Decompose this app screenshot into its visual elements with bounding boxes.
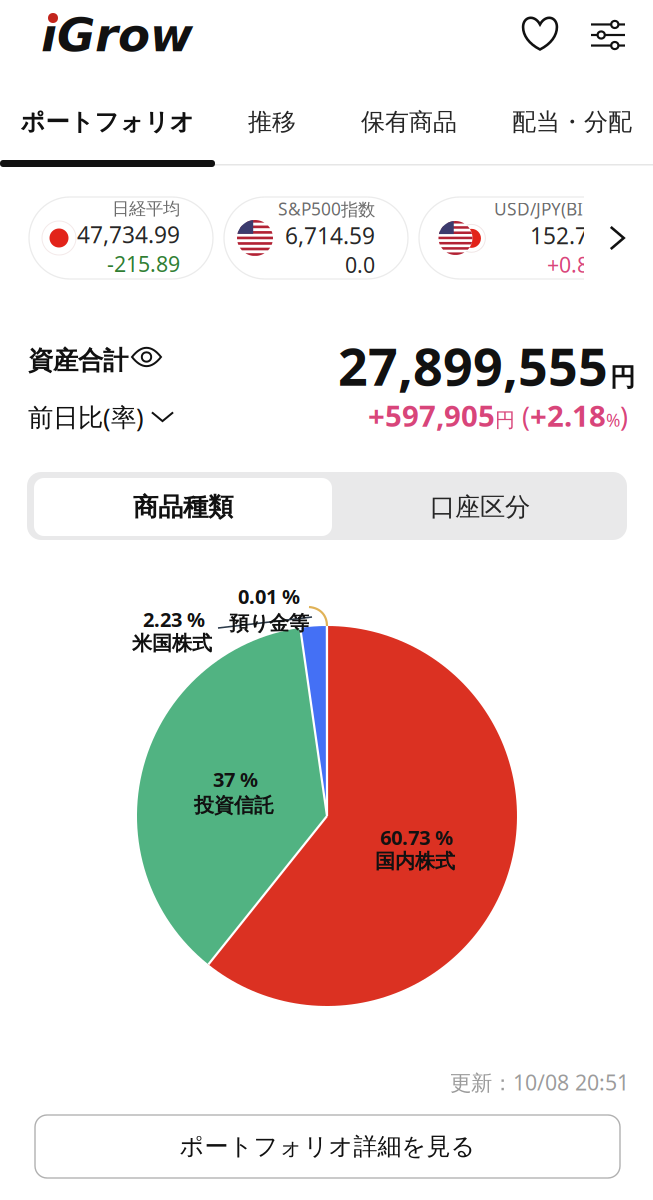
- button[interactable]: More market indices: [605, 226, 629, 250]
- staticText: 保有商品: [361, 107, 457, 137]
- staticText: 0.01 %: [238, 583, 300, 610]
- button[interactable]: ポートフォリオ詳細を見る: [35, 1115, 620, 1178]
- staticText: 日経平均: [112, 198, 180, 219]
- staticText: ): [620, 399, 628, 434]
- button[interactable]: 保有商品: [344, 92, 474, 152]
- staticText: 資産合計: [28, 345, 128, 376]
- staticText: 60.73 %: [380, 824, 453, 851]
- staticText: -215.89: [107, 249, 180, 278]
- button[interactable]: Filters: [591, 18, 625, 52]
- staticText: (: [515, 399, 530, 434]
- button[interactable]: 配当・分配: [492, 92, 652, 152]
- staticText: %: [606, 409, 620, 432]
- staticText: 国内株式: [375, 849, 455, 874]
- staticText: 37 %: [213, 766, 258, 793]
- button[interactable]: Expand change details: [151, 405, 174, 428]
- button[interactable]: ポートフォリオ: [0, 92, 215, 152]
- button[interactable]: 推移: [217, 92, 327, 152]
- staticText: iGrow: [41, 8, 193, 62]
- staticText: ポートフォリオ詳細を見る: [179, 1132, 475, 1161]
- staticText: 6,714.59: [285, 220, 375, 250]
- staticText: 更新：10/08 20:51: [450, 1068, 629, 1096]
- staticText: 27,899,555: [338, 331, 608, 400]
- staticText: 円: [495, 408, 515, 432]
- staticText: 0.0: [345, 250, 375, 279]
- button[interactable]: 口座区分: [335, 478, 625, 536]
- staticText: 商品種類: [133, 491, 233, 522]
- staticText: 米国株式: [132, 631, 212, 656]
- staticText: 口座区分: [430, 491, 530, 522]
- button[interactable]: USD/JPY(BID): [419, 197, 634, 279]
- button[interactable]: Favorites: [522, 16, 558, 52]
- staticText: 円: [610, 362, 635, 393]
- staticText: +597,905: [368, 396, 495, 435]
- staticText: +0.83: [547, 250, 601, 279]
- staticText: 投資信託: [194, 793, 274, 818]
- button[interactable]: 日経平均: [29, 197, 213, 279]
- staticText: ポートフォリオ: [20, 107, 194, 137]
- staticText: USD/JPY(BID): [494, 197, 601, 220]
- staticText: +2.18: [530, 396, 606, 435]
- staticText: 47,734.99: [77, 219, 180, 249]
- staticText: 前日比(率): [28, 400, 144, 434]
- staticText: 配当・分配: [512, 107, 632, 137]
- staticText: 2.23 %: [143, 606, 205, 633]
- button[interactable]: Toggle amount visibility: [132, 348, 161, 366]
- staticText: 預り金等: [229, 611, 309, 636]
- button[interactable]: 商品種類: [34, 478, 332, 536]
- staticText: 推移: [248, 107, 296, 137]
- button[interactable]: S&P500指数: [224, 197, 408, 279]
- staticText: S&P500指数: [278, 197, 375, 220]
- staticText: 152.75: [530, 220, 601, 250]
